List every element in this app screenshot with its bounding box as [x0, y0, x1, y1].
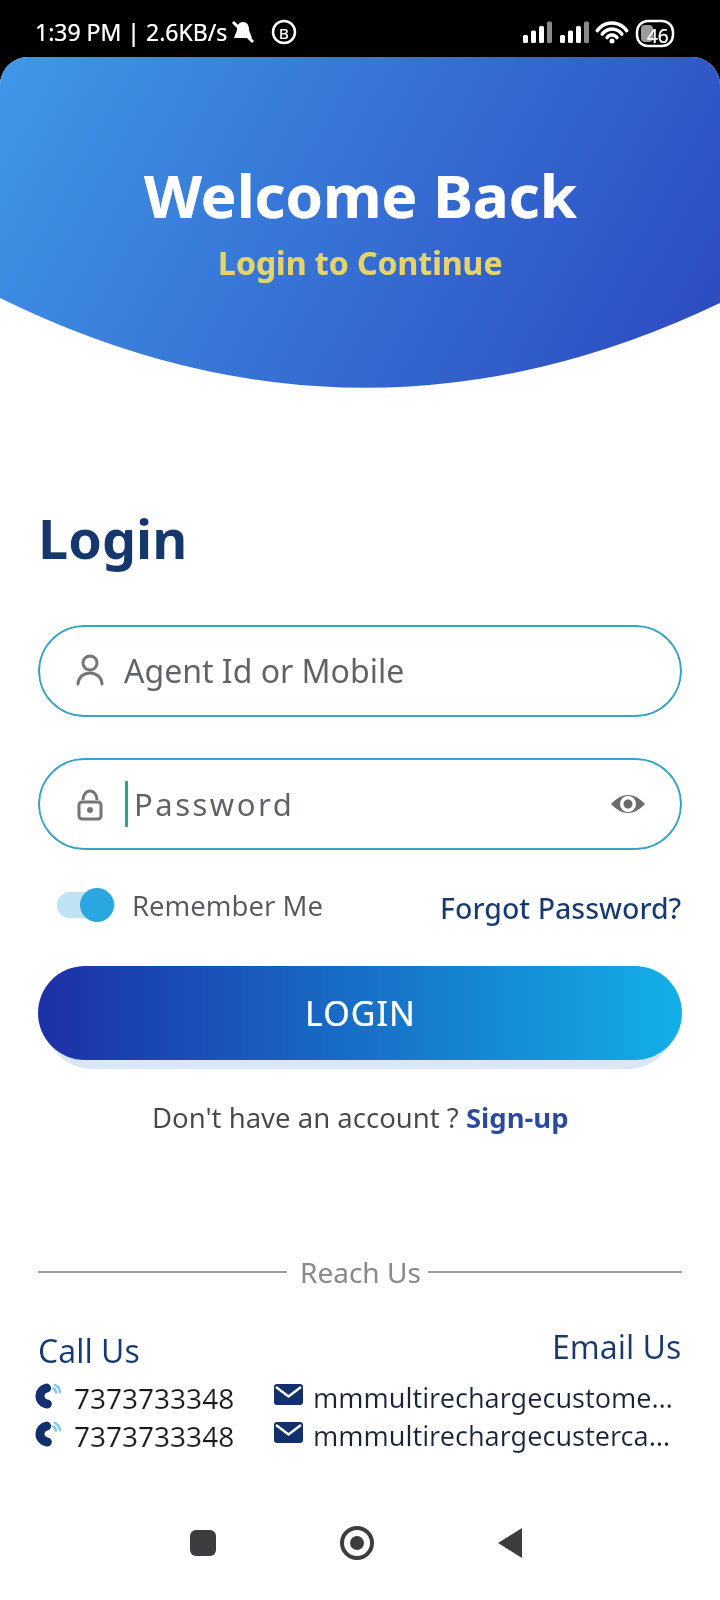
- staticText: 1:39 PM | 2.6KB/s: [35, 16, 228, 47]
- button[interactable]: Agent Id or Mobile: [38, 625, 682, 717]
- staticText: Password: [134, 783, 295, 825]
- button[interactable]: Don't have an account ? Sign-up: [152, 1099, 569, 1136]
- button[interactable]: mmmultirechargecustomercare@gmail.com: [274, 1377, 684, 1413]
- button[interactable]: [190, 1530, 216, 1556]
- staticText: 7373733348: [74, 1379, 235, 1415]
- staticText: 7373733348: [74, 1417, 235, 1453]
- staticText: Login to Continue: [218, 241, 503, 285]
- button[interactable]: 7373733348: [35, 1415, 235, 1451]
- staticText: Welcome Back: [144, 154, 577, 236]
- button[interactable]: [610, 786, 646, 822]
- staticText: Remember Me: [132, 887, 323, 924]
- staticText: mmmultirechargecustercare@gmail.com: [313, 1417, 675, 1453]
- staticText: Email Us: [552, 1325, 682, 1369]
- button[interactable]: [496, 1528, 526, 1558]
- staticText: Reach Us: [300, 1253, 421, 1291]
- staticText: mmmultirechargecustomercare@gmail.com: [313, 1379, 675, 1415]
- button[interactable]: Remember Me: [38, 885, 338, 929]
- button[interactable]: LOGIN: [38, 966, 682, 1060]
- staticText: 46: [647, 23, 669, 49]
- button[interactable]: Password: [38, 758, 682, 850]
- staticText: LOGIN: [305, 990, 416, 1036]
- button[interactable]: Forgot Password?: [440, 889, 682, 928]
- button[interactable]: mmmultirechargecustercare@gmail.com: [274, 1415, 684, 1451]
- staticText: Call Us: [38, 1329, 140, 1373]
- staticText: Agent Id or Mobile: [124, 649, 405, 693]
- button[interactable]: [339, 1525, 375, 1561]
- button[interactable]: 7373733348: [35, 1377, 235, 1413]
- staticText: Login: [38, 501, 188, 575]
- staticText: B: [279, 23, 289, 43]
